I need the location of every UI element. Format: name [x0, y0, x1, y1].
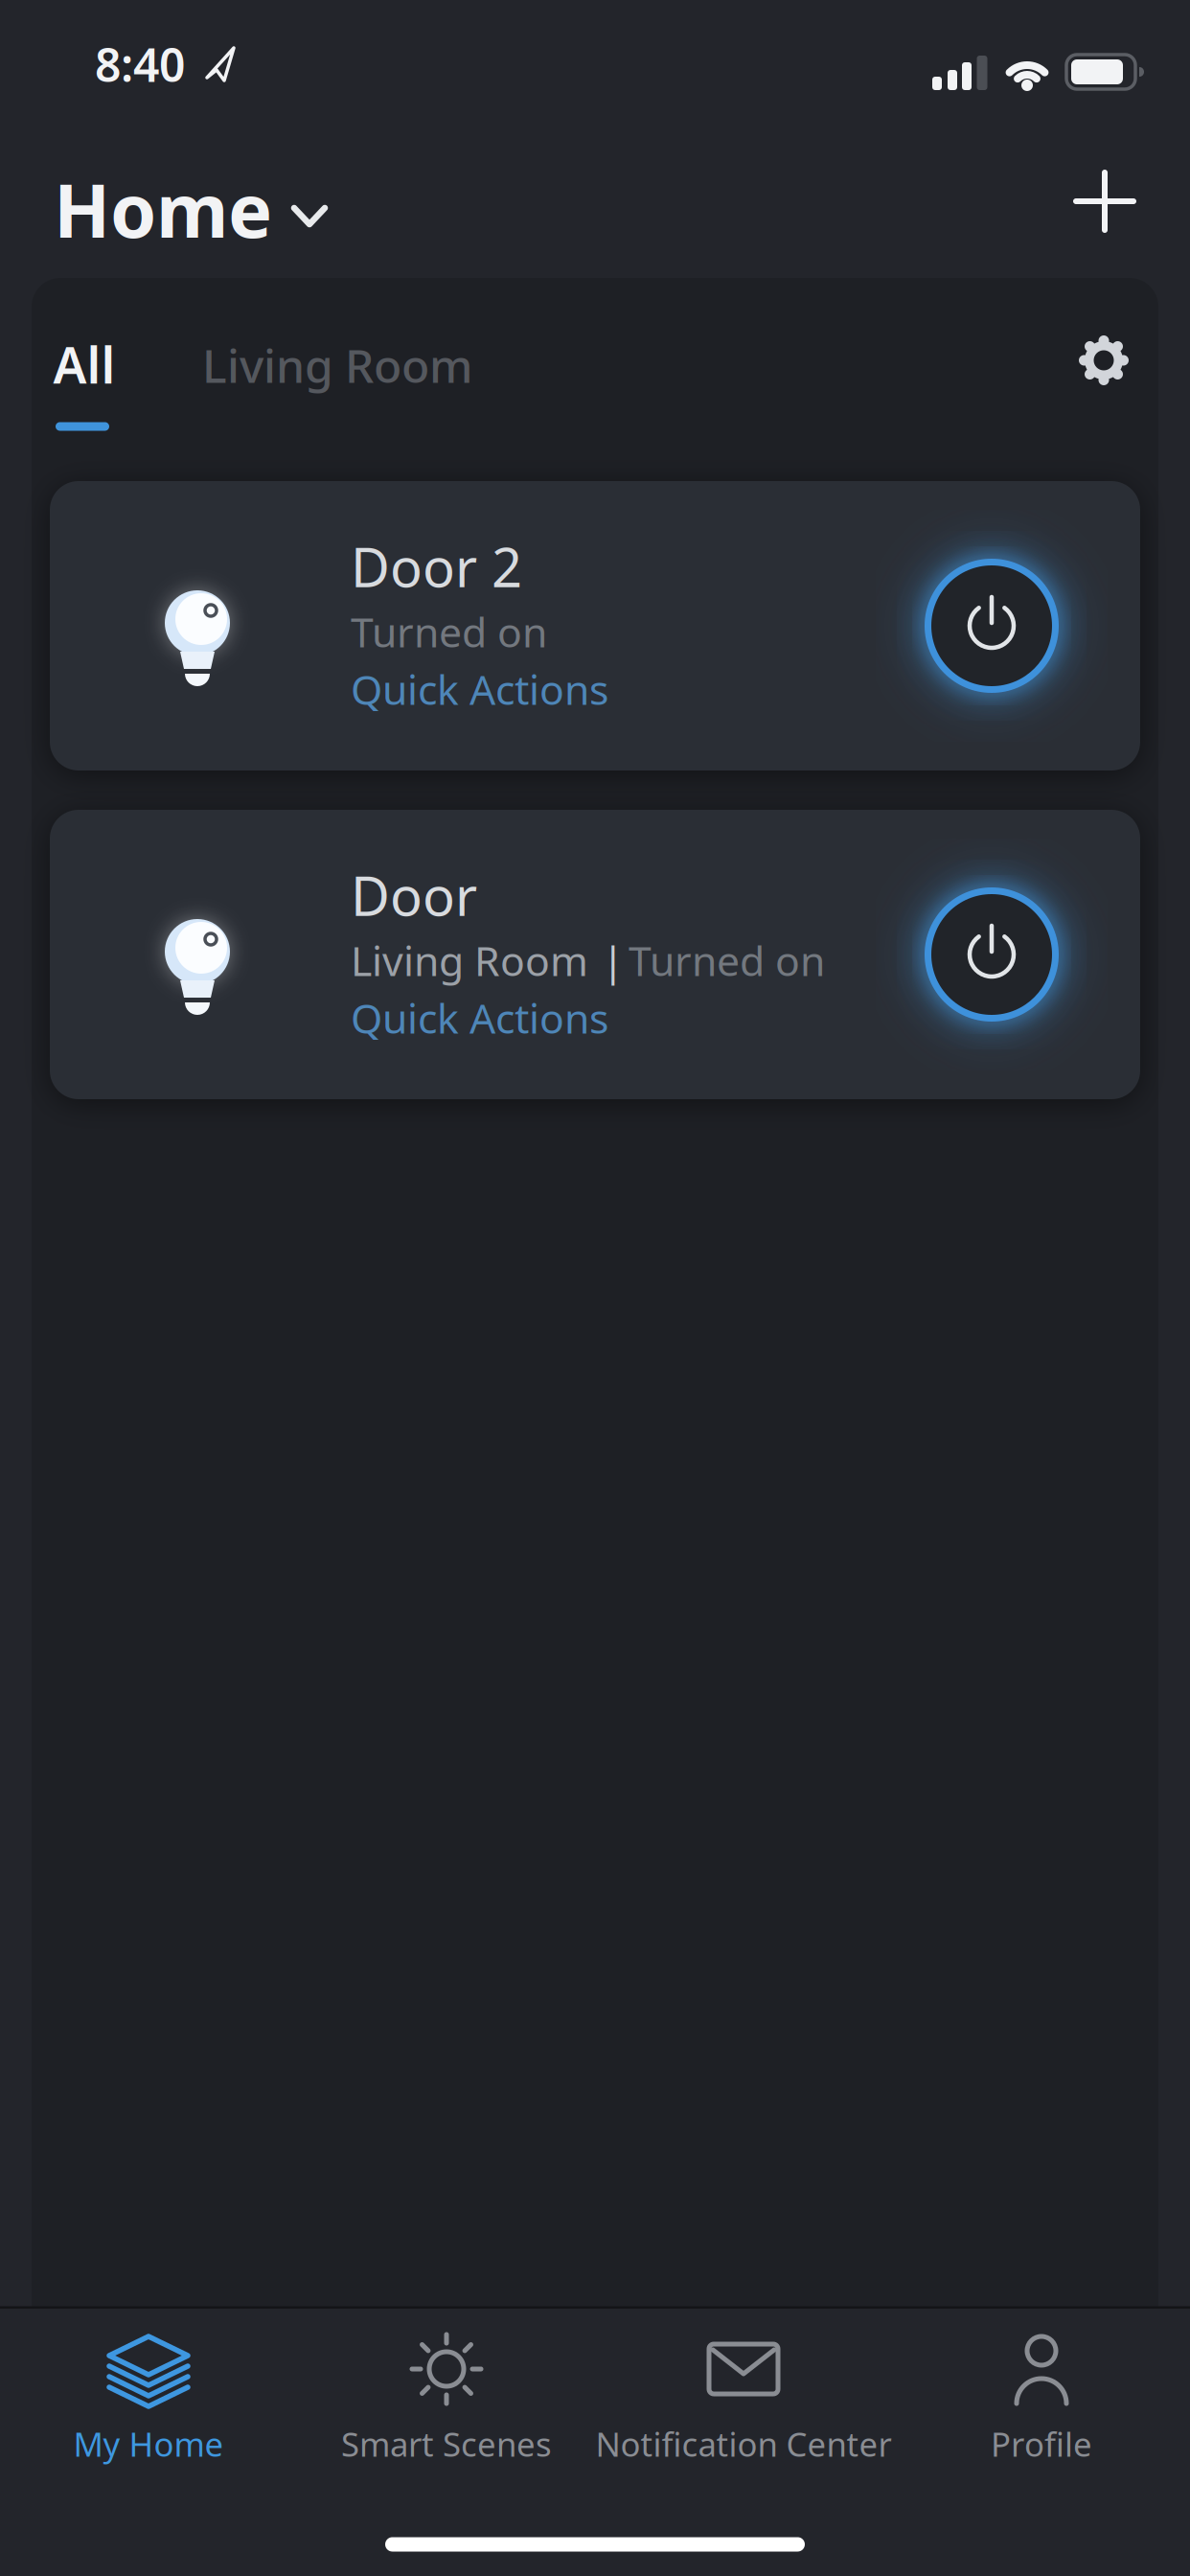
staticText: All [53, 331, 115, 397]
staticText: Turned on [351, 604, 547, 659]
button[interactable]: Smart Scenes [284, 2319, 609, 2472]
button[interactable]: Add [1074, 171, 1135, 232]
button[interactable]: All [53, 331, 115, 397]
button[interactable]: My Home [0, 2319, 311, 2472]
button[interactable]: Profile [879, 2319, 1190, 2472]
button[interactable]: Door 2 [50, 481, 1140, 770]
button[interactable]: Home [54, 160, 328, 258]
staticText: Turned on [629, 933, 825, 987]
button[interactable]: Settings [1073, 330, 1134, 391]
staticText: Profile [991, 2422, 1092, 2466]
staticText: Door 2 [351, 531, 522, 602]
staticText: Quick Actions [351, 991, 608, 1045]
staticText: Quick Actions [351, 662, 608, 716]
button[interactable]: Quick Actions [351, 662, 608, 716]
staticText: Living Room [202, 335, 472, 396]
staticText: | [602, 933, 625, 987]
staticText: Notification Center [595, 2422, 892, 2466]
button[interactable]: Door [50, 810, 1140, 1099]
staticText: Living Room [351, 933, 588, 987]
button[interactable]: Living Room [202, 335, 472, 396]
button[interactable]: Quick Actions [351, 991, 608, 1045]
button[interactable]: Notification Center [581, 2319, 906, 2472]
staticText: Home [54, 160, 272, 258]
button[interactable]: Power [896, 859, 1087, 1050]
staticText: Smart Scenes [341, 2422, 552, 2466]
staticText: 8:40 [95, 34, 185, 95]
staticText: My Home [73, 2422, 224, 2466]
staticText: Door [351, 859, 477, 931]
button[interactable]: Power [896, 530, 1087, 722]
